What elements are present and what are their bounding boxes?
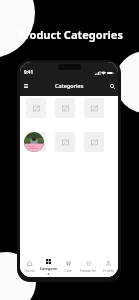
button[interactable]: Category — [55, 132, 75, 152]
button[interactable]: Categories — [39, 257, 58, 277]
button[interactable]: Category — [84, 98, 104, 118]
button[interactable]: Favourite — [78, 257, 98, 277]
button[interactable]: Category — [26, 98, 46, 118]
button[interactable]: Search — [107, 81, 117, 91]
staticText: Product Categories — [18, 27, 123, 42]
button[interactable]: Home — [20, 257, 39, 277]
staticText: Categories — [39, 266, 58, 276]
staticText: Profile — [103, 268, 114, 273]
staticText: Favourite — [80, 268, 96, 273]
button[interactable]: Menu — [21, 81, 31, 91]
button[interactable]: Category — [55, 98, 75, 118]
staticText: 9:41 — [24, 69, 33, 75]
button[interactable]: Cart — [58, 257, 78, 277]
staticText: Cart — [64, 268, 72, 273]
staticText: Categories — [55, 82, 84, 89]
button[interactable]: Category photo — [24, 132, 44, 152]
staticText: Home — [24, 268, 35, 273]
button[interactable]: Category — [84, 132, 104, 152]
button[interactable]: Category — [26, 132, 46, 152]
button[interactable]: Profile — [98, 257, 118, 277]
